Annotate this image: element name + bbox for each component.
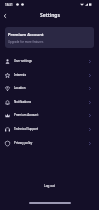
staticText: Premium Account [14,113,39,117]
staticText: Location [14,86,26,90]
staticText: Log out [44,184,55,188]
staticText: Settings [40,12,60,19]
button[interactable]: Back [0,11,10,21]
staticText: Technical Support [14,127,39,131]
button[interactable]: Premium Account [5,27,94,48]
staticText: User settings [14,59,32,63]
staticText: Privacy policy [14,141,33,145]
button[interactable]: Privacy policy [0,136,99,150]
button[interactable]: Technical Support [0,122,99,136]
staticText: Notifications [14,100,32,104]
button[interactable]: Notifications [0,95,99,109]
staticText: Interests [14,73,27,77]
button[interactable]: User settings [0,54,99,68]
staticText: Premium Account [8,32,44,37]
button[interactable]: Interests [0,68,99,82]
staticText: 18:31 [5,3,13,7]
button[interactable]: Premium Account [0,108,99,122]
button[interactable]: Location [0,81,99,95]
staticText: Upgrade for more features [8,40,44,44]
button[interactable]: Log out [34,181,65,191]
